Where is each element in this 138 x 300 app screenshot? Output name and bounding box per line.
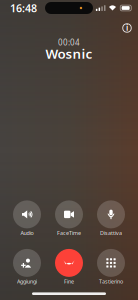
button[interactable]: Aggiungi [6, 249, 48, 286]
staticText: i [126, 22, 128, 33]
staticText: Disattiva [100, 229, 122, 236]
button[interactable]: Disattiva [90, 200, 132, 237]
staticText: 00:04 [58, 37, 80, 48]
button[interactable]: Fine [48, 249, 90, 286]
staticText: Fine [64, 278, 74, 285]
staticText: FaceTime [57, 229, 81, 236]
staticText: Wosnic [45, 45, 92, 62]
staticText: Aggiungi [17, 278, 37, 285]
staticText: Audio [20, 229, 33, 236]
button[interactable]: Call info [118, 21, 136, 35]
button[interactable]: FaceTime [48, 200, 90, 237]
staticText: 16:48 [10, 1, 37, 15]
button[interactable]: Tastierino [90, 249, 132, 286]
button[interactable]: Audio [6, 200, 48, 237]
staticText: Tastierino [99, 278, 123, 285]
